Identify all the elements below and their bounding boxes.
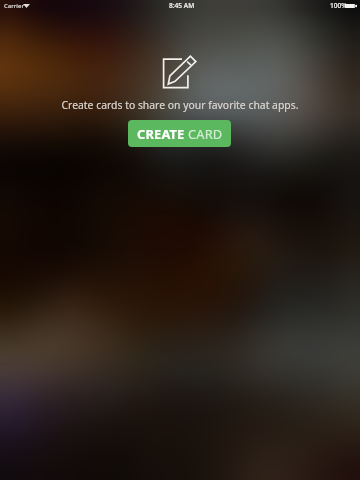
- staticText: Create cards to share on your favorite c…: [0, 98, 360, 112]
- staticText: 100%: [330, 1, 347, 10]
- staticText: CREATE CARD: [137, 125, 223, 142]
- other: Create card: [162, 54, 198, 90]
- staticText: 8:45 AM: [169, 1, 195, 10]
- staticText: Carrier: [4, 2, 24, 10]
- button[interactable]: CREATE CARD: [128, 120, 231, 147]
